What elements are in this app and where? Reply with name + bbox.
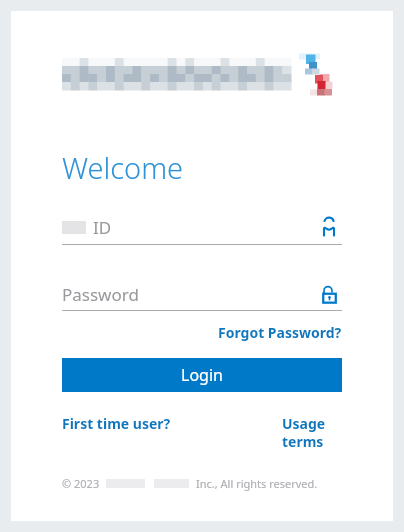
button[interactable]: Login <box>62 358 342 392</box>
staticText: Login <box>181 364 223 386</box>
button[interactable]: Forgot Password? <box>218 323 342 342</box>
button[interactable]: Choose user ID <box>316 214 342 240</box>
staticText: Welcome <box>62 148 184 187</box>
staticText: Password <box>62 283 139 306</box>
button[interactable]: Password <box>62 278 342 310</box>
staticText: Usage terms <box>282 414 342 451</box>
button[interactable]: First time user? <box>62 414 171 433</box>
button[interactable]: Usage terms <box>282 414 342 451</box>
button[interactable]: Show password <box>316 281 342 307</box>
button[interactable]: ID <box>62 210 342 244</box>
staticText: © 2023 <box>62 476 100 491</box>
staticText: Inc., All rights reserved. <box>196 476 318 491</box>
staticText: ID <box>93 216 112 239</box>
